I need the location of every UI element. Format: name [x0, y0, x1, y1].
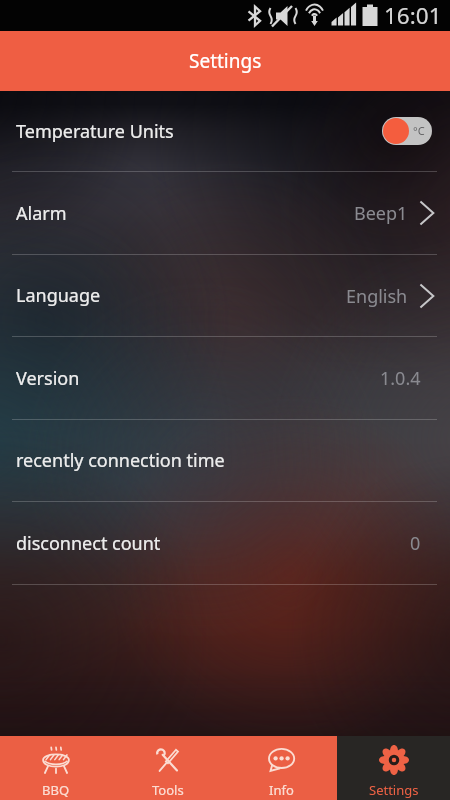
staticText: BBQ [42, 781, 70, 799]
staticText: recently connection time [16, 448, 225, 473]
staticText: 1.0.4 [380, 366, 421, 391]
staticText: Alarm [16, 201, 67, 226]
button[interactable]: recently connection time [0, 420, 450, 501]
staticText: Settings [369, 781, 419, 799]
staticText: 16:01 [384, 0, 442, 30]
button[interactable]: Info [224, 736, 337, 800]
button[interactable]: Alarm [0, 172, 450, 254]
staticText: °C [413, 123, 425, 138]
button[interactable]: Temperature units toggle [382, 117, 432, 145]
staticText: 0 [410, 531, 421, 556]
staticText: Temperature Units [16, 119, 174, 144]
button[interactable]: Temperature Units [0, 91, 450, 171]
staticText: disconnect count [16, 531, 161, 556]
button[interactable]: Settings [337, 736, 450, 800]
button[interactable]: Version [0, 337, 450, 419]
staticText: Language [16, 283, 101, 308]
button[interactable]: disconnect count [0, 502, 450, 584]
staticText: Settings [189, 48, 262, 74]
staticText: Info [269, 781, 294, 799]
staticText: English [346, 284, 408, 309]
button[interactable]: Language [0, 255, 450, 336]
staticText: Beep1 [354, 201, 408, 226]
staticText: Version [16, 366, 80, 391]
button[interactable]: BBQ [0, 736, 112, 800]
button[interactable]: Tools [112, 736, 224, 800]
staticText: Tools [152, 781, 184, 799]
